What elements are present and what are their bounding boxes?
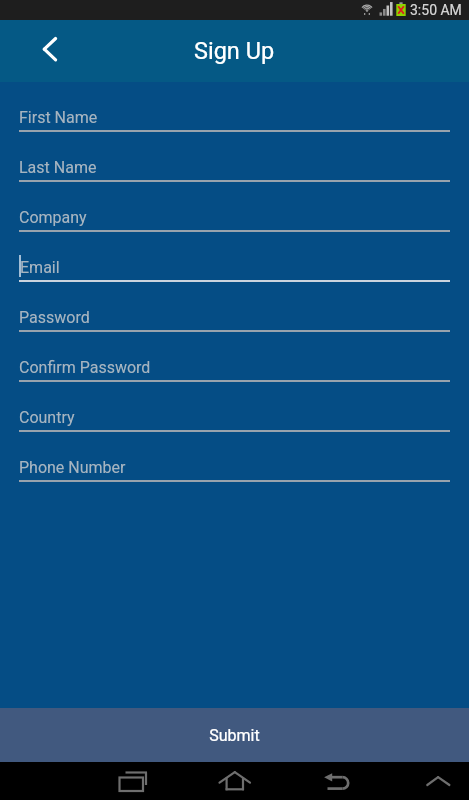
- button[interactable]: Password: [0, 298, 469, 348]
- button[interactable]: Submit: [0, 708, 469, 762]
- button[interactable]: Phone Number: [0, 448, 469, 498]
- staticText: Email: [20, 258, 60, 277]
- staticText: Submit: [209, 726, 260, 745]
- button[interactable]: Confirm Password: [0, 348, 469, 398]
- button[interactable]: Email: [0, 248, 469, 298]
- staticText: First Name: [19, 108, 98, 127]
- button[interactable]: Menu: [414, 762, 469, 800]
- staticText: Confirm Password: [19, 358, 151, 377]
- button[interactable]: Company: [0, 198, 469, 248]
- button[interactable]: First Name: [0, 98, 469, 148]
- staticText: Phone Number: [19, 458, 126, 477]
- button[interactable]: Back: [26, 26, 72, 76]
- staticText: Sign Up: [194, 37, 275, 65]
- button[interactable]: Home: [166, 762, 232, 800]
- staticText: Company: [19, 208, 87, 227]
- staticText: Password: [19, 308, 90, 327]
- button[interactable]: Back: [232, 762, 298, 800]
- button[interactable]: Country: [0, 398, 469, 448]
- staticText: Country: [19, 408, 75, 427]
- staticText: 3:50 AM: [410, 2, 462, 18]
- button[interactable]: Recent apps: [100, 762, 166, 800]
- staticText: Last Name: [19, 158, 97, 177]
- button[interactable]: Last Name: [0, 148, 469, 198]
